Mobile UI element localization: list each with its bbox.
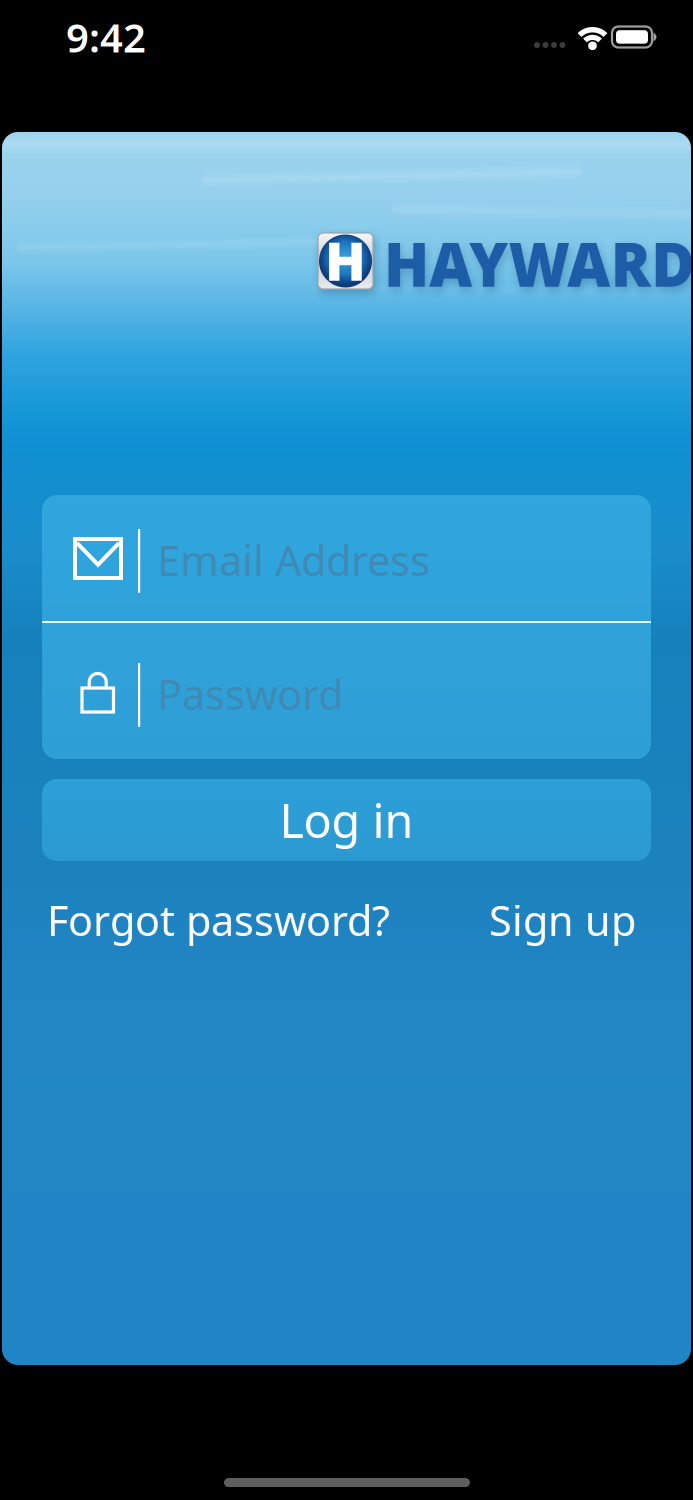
- staticText: HAYWARD: [384, 222, 693, 304]
- staticText: Email Address: [157, 533, 430, 587]
- button[interactable]: Log in: [42, 779, 651, 861]
- button[interactable]: Password: [42, 629, 651, 756]
- staticText: H: [325, 225, 366, 295]
- staticText: 9:42: [66, 10, 146, 63]
- staticText: Log in: [279, 789, 413, 851]
- staticText: Sign up: [489, 893, 636, 947]
- staticText: Forgot password?: [47, 893, 390, 947]
- staticText: Password: [157, 667, 343, 721]
- button[interactable]: Sign up: [466, 898, 636, 942]
- button[interactable]: Email Address: [42, 495, 651, 622]
- button[interactable]: Forgot password?: [47, 898, 477, 942]
